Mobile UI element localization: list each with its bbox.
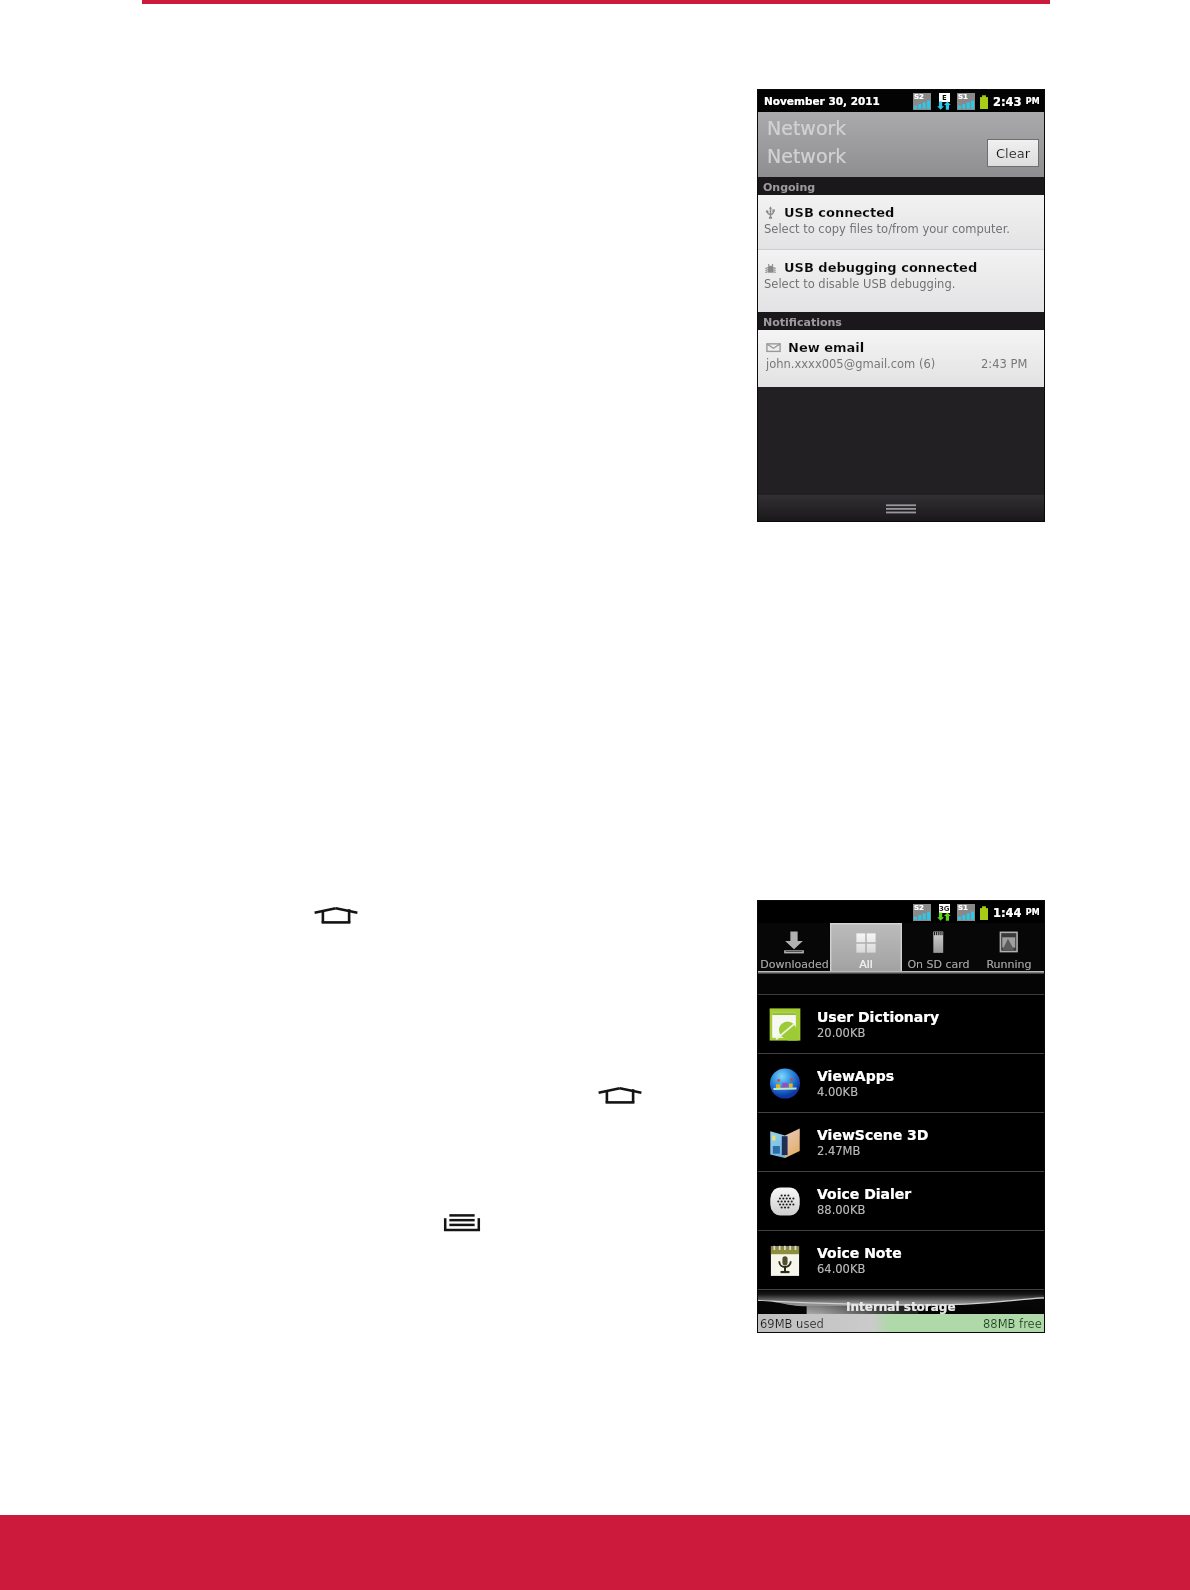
staticText: User Dictionary: [817, 1009, 940, 1025]
button[interactable]: Clear: [988, 140, 1038, 166]
button[interactable]: USB connected: [758, 195, 1044, 249]
button[interactable]: Home: [597, 1080, 643, 1108]
button[interactable]: Close notification shade: [758, 495, 1044, 521]
staticText: 69MB used: [760, 1317, 824, 1330]
button[interactable]: ViewApps: [758, 1054, 1044, 1112]
staticText: ViewApps: [817, 1068, 895, 1084]
staticText: Select to copy files to/from your comput…: [764, 222, 1011, 235]
staticText: 2:43 PM: [981, 357, 1028, 370]
staticText: S2: [914, 93, 924, 101]
staticText: 2.47MB: [817, 1144, 861, 1157]
staticText: Internal storage: [846, 1300, 956, 1314]
staticText: S2: [914, 904, 924, 912]
staticText: Running: [986, 958, 1032, 971]
staticText: 2:43: [993, 95, 1022, 108]
button[interactable]: USB debugging connected: [758, 250, 1044, 312]
staticText: USB connected: [784, 205, 895, 220]
staticText: 88.00KB: [817, 1203, 866, 1216]
staticText: S1: [958, 93, 968, 101]
button[interactable]: Menu: [439, 1207, 485, 1235]
button[interactable]: Voice Note: [758, 1231, 1044, 1289]
staticText: Notifications: [763, 316, 842, 329]
button[interactable]: Downloaded: [758, 923, 830, 971]
staticText: Select to disable USB debugging.: [764, 277, 956, 290]
staticText: john.xxxx005@gmail.com (6): [766, 357, 936, 370]
staticText: On SD card: [907, 958, 970, 971]
staticText: USB debugging connected: [784, 260, 978, 275]
staticText: 64.00KB: [817, 1262, 866, 1275]
button[interactable]: On SD card: [902, 923, 974, 971]
staticText: PM: [1023, 908, 1040, 917]
staticText: 4.00KB: [817, 1085, 859, 1098]
staticText: November 30, 2011: [764, 95, 880, 107]
button[interactable]: ViewScene 3D: [758, 1113, 1044, 1171]
staticText: PM: [1023, 97, 1040, 106]
staticText: E: [942, 94, 947, 102]
staticText: S1: [958, 904, 968, 912]
staticText: 88MB free: [983, 1317, 1042, 1330]
staticText: 3G: [939, 905, 950, 913]
staticText: Voice Dialer: [817, 1186, 912, 1202]
staticText: New email: [788, 340, 865, 355]
staticText: ViewScene 3D: [817, 1127, 929, 1143]
button[interactable]: Running: [974, 923, 1044, 971]
button[interactable]: New email: [758, 330, 1044, 387]
staticText: Downloaded: [760, 958, 829, 971]
staticText: All: [859, 958, 873, 971]
staticText: Network: [767, 117, 847, 139]
staticText: Network: [767, 145, 847, 167]
staticText: Voice Note: [817, 1245, 902, 1261]
staticText: 20.00KB: [817, 1026, 866, 1039]
staticText: Clear: [996, 146, 1030, 161]
button[interactable]: All: [830, 923, 902, 971]
staticText: 1:44: [993, 906, 1022, 919]
button[interactable]: Home: [313, 900, 359, 928]
staticText: Ongoing: [763, 181, 816, 194]
button[interactable]: Voice Dialer: [758, 1172, 1044, 1230]
button[interactable]: User Dictionary: [758, 995, 1044, 1053]
